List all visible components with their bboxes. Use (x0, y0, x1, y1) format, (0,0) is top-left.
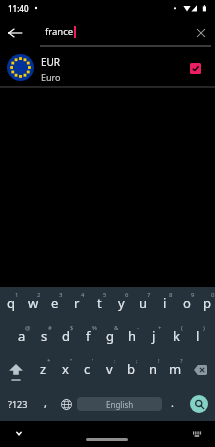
button[interactable]: , (36, 387, 55, 421)
button[interactable]: English (77, 397, 162, 411)
staticText: ! (158, 357, 160, 365)
staticText: 0 (211, 291, 215, 299)
staticText: e (51, 294, 59, 312)
staticText: ' (92, 357, 94, 365)
button[interactable]: ( (165, 321, 187, 354)
button[interactable]: @ (11, 321, 33, 354)
button[interactable]: # (33, 321, 55, 354)
staticText: ? (180, 357, 183, 365)
staticText: 6 (125, 291, 129, 299)
staticText: b (127, 360, 135, 378)
staticText: 1 (15, 291, 19, 299)
staticText: q (7, 294, 15, 312)
button[interactable]: 7 (132, 288, 154, 321)
staticText: . (171, 395, 174, 410)
staticText: 4 (81, 291, 85, 299)
button[interactable]: Clear search (187, 19, 215, 47)
staticText: n (149, 360, 158, 378)
staticText: y (118, 294, 125, 312)
button[interactable]: * (32, 354, 54, 387)
staticText: 11:40 (8, 3, 29, 14)
button[interactable]: ' (76, 354, 98, 387)
button[interactable]: Backspace (186, 354, 215, 387)
staticText: , (44, 395, 47, 410)
staticText: 3 (59, 291, 63, 299)
staticText: f (86, 327, 91, 345)
button[interactable]: Hide keyboard (7, 421, 31, 445)
button[interactable]: 9 (176, 288, 198, 321)
button[interactable]: ?123 (0, 387, 36, 421)
staticText: v (106, 360, 113, 378)
staticText: z (40, 360, 47, 378)
button[interactable]: ; (120, 354, 142, 387)
staticText: @ (25, 324, 31, 332)
staticText: p (203, 294, 211, 312)
button[interactable]: Change language (55, 387, 77, 421)
button[interactable]: 2 (22, 288, 44, 321)
button[interactable]: ! (142, 354, 164, 387)
staticText: d (62, 327, 70, 345)
staticText: " (70, 357, 73, 365)
staticText: 7 (147, 291, 151, 299)
staticText: c (84, 360, 91, 378)
staticText: a (18, 327, 26, 345)
staticText: 2 (37, 291, 41, 299)
button[interactable]: ? (164, 354, 186, 387)
staticText: English (106, 399, 134, 410)
staticText: + (158, 324, 162, 332)
staticText: 8 (169, 291, 173, 299)
staticText: Euro (41, 71, 61, 83)
button[interactable]: + (143, 321, 165, 354)
staticText: $ (70, 324, 74, 332)
button[interactable]: Switch keyboard (187, 421, 207, 441)
button[interactable]: Back (0, 18, 30, 47)
button[interactable]: ) (187, 321, 209, 354)
staticText: # (48, 324, 52, 332)
staticText: : (114, 357, 116, 365)
button[interactable]: Selected currency (190, 63, 201, 74)
staticText: % (92, 324, 97, 332)
staticText: m (169, 360, 182, 378)
staticText: s (41, 327, 48, 345)
staticText: * (47, 357, 51, 365)
staticText: r (74, 294, 80, 312)
staticText: france (45, 25, 74, 38)
staticText: ) (203, 324, 205, 332)
button[interactable]: & (99, 321, 121, 354)
staticText: & (114, 324, 119, 332)
button[interactable]: 0 (198, 288, 215, 321)
staticText: x (62, 360, 69, 378)
button[interactable]: : (98, 354, 120, 387)
button[interactable]: . (162, 387, 182, 421)
staticText: u (139, 294, 148, 312)
staticText: k (173, 327, 180, 345)
staticText: 5 (103, 291, 107, 299)
staticText: o (183, 294, 191, 312)
staticText: - (137, 324, 139, 332)
button[interactable]: 8 (154, 288, 176, 321)
staticText: g (106, 327, 114, 345)
staticText: j (152, 327, 156, 345)
staticText: 9 (191, 291, 195, 299)
button[interactable]: 6 (110, 288, 132, 321)
staticText: ( (181, 324, 183, 332)
button[interactable]: - (121, 321, 143, 354)
staticText: l (196, 327, 200, 345)
button[interactable]: 3 (44, 288, 66, 321)
staticText: t (97, 294, 102, 312)
button[interactable]: " (54, 354, 76, 387)
staticText: ?123 (8, 398, 28, 410)
button[interactable]: EUR (0, 47, 215, 86)
button[interactable]: Shift (0, 354, 32, 387)
button[interactable]: 4 (66, 288, 88, 321)
button[interactable]: 1 (0, 288, 22, 321)
staticText: w (28, 294, 39, 312)
staticText: h (128, 327, 137, 345)
button[interactable]: 5 (88, 288, 110, 321)
staticText: EUR (41, 55, 61, 69)
staticText: i (163, 294, 167, 312)
button[interactable]: % (77, 321, 99, 354)
button[interactable]: $ (55, 321, 77, 354)
button[interactable]: Search (190, 395, 208, 413)
staticText: ; (136, 357, 138, 365)
